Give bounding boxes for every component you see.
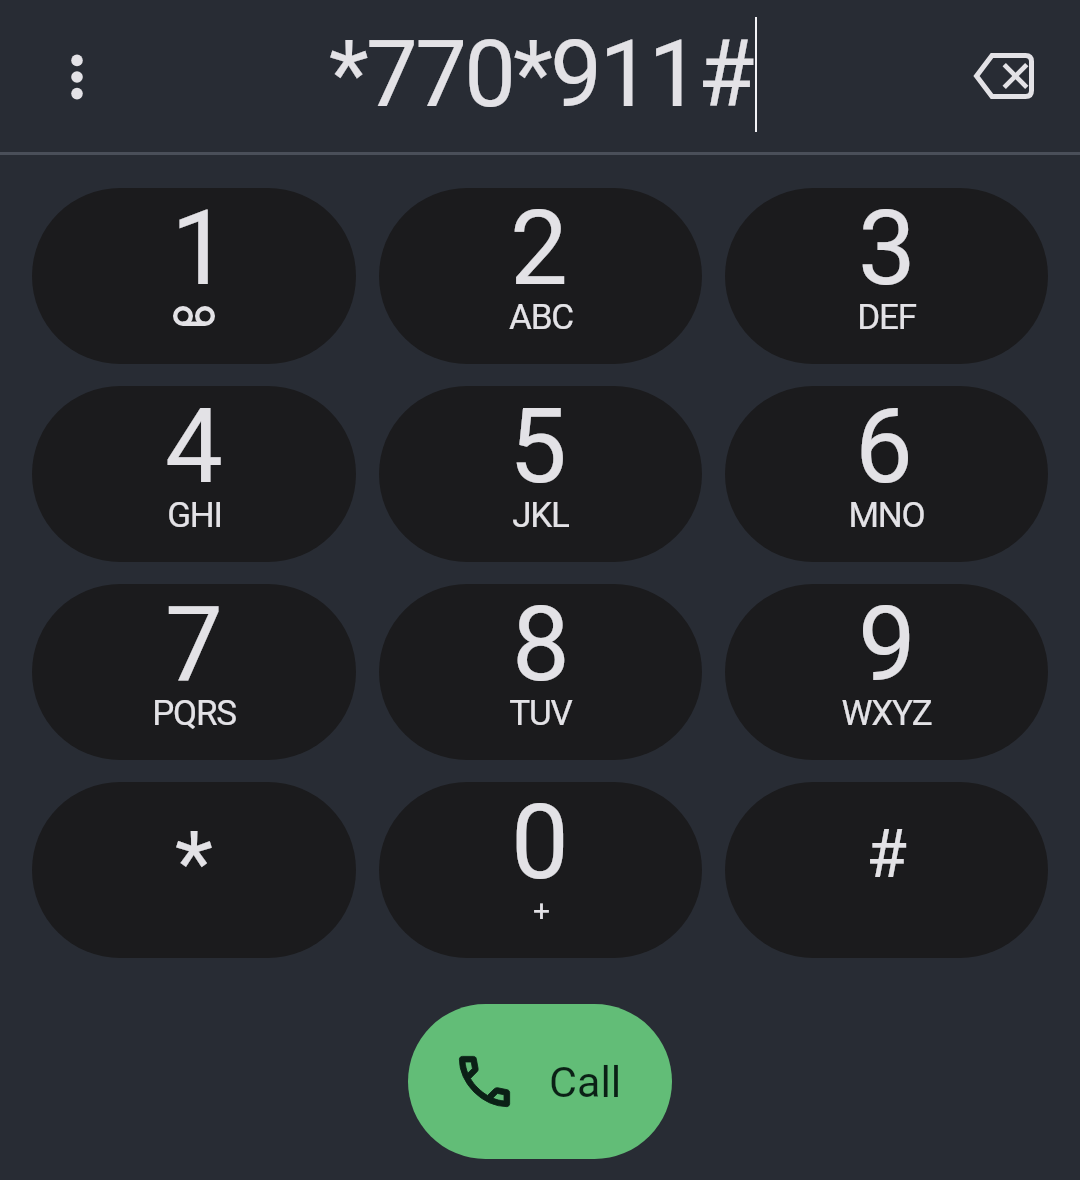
staticText: MNO xyxy=(848,495,925,536)
staticText: *770*911# xyxy=(329,21,752,129)
staticText: 4 xyxy=(165,386,223,507)
button[interactable]: 8 xyxy=(379,584,702,760)
staticText: GHI xyxy=(167,495,222,536)
button[interactable]: 3 xyxy=(725,188,1048,364)
button[interactable]: 9 xyxy=(725,584,1048,760)
button[interactable]: Backspace xyxy=(956,28,1052,124)
button[interactable]: 0 xyxy=(379,782,702,958)
staticText: 2 xyxy=(510,188,568,309)
button[interactable]: Pound xyxy=(725,782,1048,958)
staticText: 8 xyxy=(512,584,570,705)
button[interactable]: 4 xyxy=(32,386,356,562)
staticText: 9 xyxy=(858,584,916,705)
button[interactable]: 6 xyxy=(725,386,1048,562)
staticText: * xyxy=(175,811,213,914)
staticText: + xyxy=(533,893,549,928)
staticText: TUV xyxy=(509,693,572,734)
staticText: 6 xyxy=(855,386,913,507)
staticText: 5 xyxy=(509,386,567,507)
button[interactable]: 5 xyxy=(379,386,702,562)
staticText: 1 xyxy=(171,188,229,309)
button[interactable]: Call xyxy=(408,1004,672,1159)
staticText: PQRS xyxy=(152,693,236,734)
staticText: # xyxy=(866,816,907,893)
staticText: Call xyxy=(549,1057,622,1107)
staticText: 7 xyxy=(165,584,223,705)
staticText: ABC xyxy=(509,297,573,338)
button[interactable]: More options xyxy=(29,29,125,125)
staticText: JKL xyxy=(512,495,569,536)
button[interactable]: Star xyxy=(32,782,356,958)
staticText: DEF xyxy=(857,297,916,338)
staticText: 0 xyxy=(511,782,569,903)
staticText: 3 xyxy=(858,188,916,309)
button[interactable]: 2 xyxy=(379,188,702,364)
button[interactable]: 7 xyxy=(32,584,356,760)
staticText: WXYZ xyxy=(841,693,932,734)
button[interactable]: 1 xyxy=(32,188,356,364)
